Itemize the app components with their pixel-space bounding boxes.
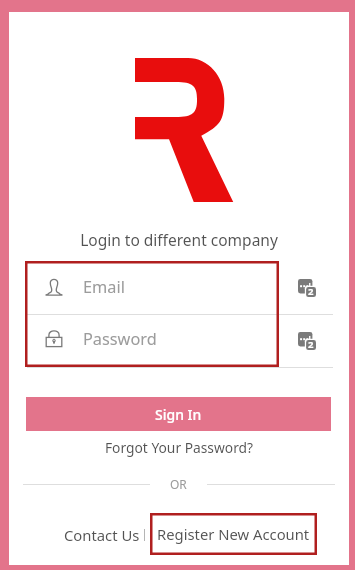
button[interactable]: Password — [25, 313, 279, 365]
button[interactable]: Contact Us — [62, 520, 142, 550]
staticText: Register New Account — [157, 524, 310, 544]
staticText: Password — [83, 328, 157, 350]
staticText: Email — [83, 276, 125, 298]
button[interactable]: Use saved password — [298, 279, 316, 297]
button[interactable]: Use saved password — [298, 332, 316, 350]
button[interactable]: Register New Account — [150, 513, 317, 555]
button[interactable]: Email — [25, 261, 279, 313]
staticText: Login to different company — [9, 229, 349, 250]
staticText: 2 — [308, 338, 314, 351]
button[interactable]: Forgot Your Password? — [9, 438, 349, 457]
staticText: 2 — [308, 285, 314, 298]
staticText: Sign In — [155, 405, 202, 424]
button[interactable]: Sign In — [26, 397, 331, 431]
staticText: Contact Us — [64, 525, 140, 545]
staticText: OR — [170, 476, 187, 492]
